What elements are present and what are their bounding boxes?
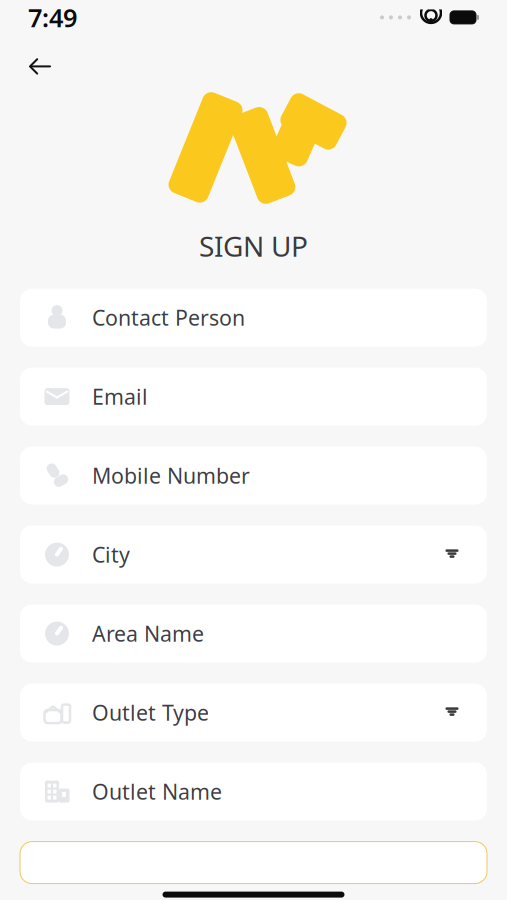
staticText: Email	[92, 382, 148, 411]
staticText: City	[92, 540, 130, 569]
button[interactable]: Contact Person	[20, 289, 487, 347]
button[interactable]: Outlet Name	[20, 763, 487, 821]
button[interactable]: Email	[20, 368, 487, 426]
staticText: 7:49	[28, 1, 77, 34]
staticText: SIGN UP	[199, 227, 308, 265]
staticText: Area Name	[92, 619, 204, 648]
staticText: Mobile Number	[92, 461, 250, 490]
staticText: Outlet Type	[92, 698, 209, 727]
button[interactable]: Outlet Type	[20, 684, 487, 742]
button[interactable]: Back	[18, 44, 62, 88]
staticText: Contact Person	[92, 303, 245, 332]
button[interactable]: Mobile Number	[20, 447, 487, 505]
button[interactable]: City	[20, 526, 487, 584]
staticText: Outlet Name	[92, 777, 222, 806]
button[interactable]: Address	[20, 842, 487, 884]
button[interactable]: Area Name	[20, 605, 487, 663]
